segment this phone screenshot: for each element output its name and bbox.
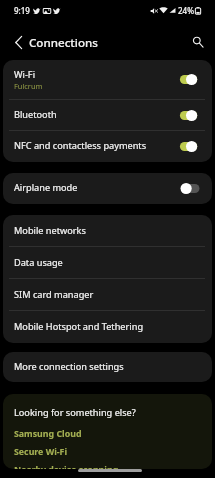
- staticText: SIM card manager: [14, 288, 94, 301]
- staticText: NFC and contactless payments: [14, 139, 147, 152]
- staticText: Wi-Fi: [14, 68, 36, 81]
- staticText: Airplane mode: [14, 181, 78, 194]
- button[interactable]: On: [178, 140, 200, 153]
- staticText: Mobile Hotspot and Tethering: [14, 320, 144, 333]
- staticText: Data usage: [14, 256, 63, 269]
- button[interactable]: SIM card manager: [3, 279, 212, 311]
- staticText: More connection settings: [14, 360, 124, 373]
- button[interactable]: Bluetooth: [3, 100, 212, 131]
- button[interactable]: NFC and contactless payments: [3, 131, 212, 162]
- button[interactable]: Nearby device scanning: [14, 464, 119, 469]
- button[interactable]: Mobile Hotspot and Tethering: [3, 311, 212, 343]
- button[interactable]: Off: [178, 182, 200, 195]
- button[interactable]: Samsung Cloud: [14, 428, 82, 440]
- button[interactable]: Data usage: [3, 247, 212, 279]
- button[interactable]: Secure Wi-Fi: [14, 446, 68, 458]
- button[interactable]: On: [178, 109, 200, 122]
- staticText: 9:19: [14, 5, 30, 16]
- button[interactable]: Navigate up: [6, 30, 30, 54]
- button[interactable]: More connection settings: [3, 352, 212, 382]
- staticText: Looking for something else?: [14, 406, 136, 419]
- staticText: Bluetooth: [14, 108, 57, 121]
- button[interactable]: Wi-Fi: [3, 60, 212, 100]
- staticText: Fulcrum: [14, 81, 43, 91]
- staticText: Connections: [29, 35, 98, 51]
- button[interactable]: Airplane mode: [3, 173, 212, 204]
- button[interactable]: Search: [186, 30, 210, 54]
- button[interactable]: Mobile networks: [3, 215, 212, 247]
- button[interactable]: On: [178, 73, 200, 86]
- staticText: Mobile networks: [14, 224, 86, 237]
- staticText: 24%: [178, 5, 194, 16]
